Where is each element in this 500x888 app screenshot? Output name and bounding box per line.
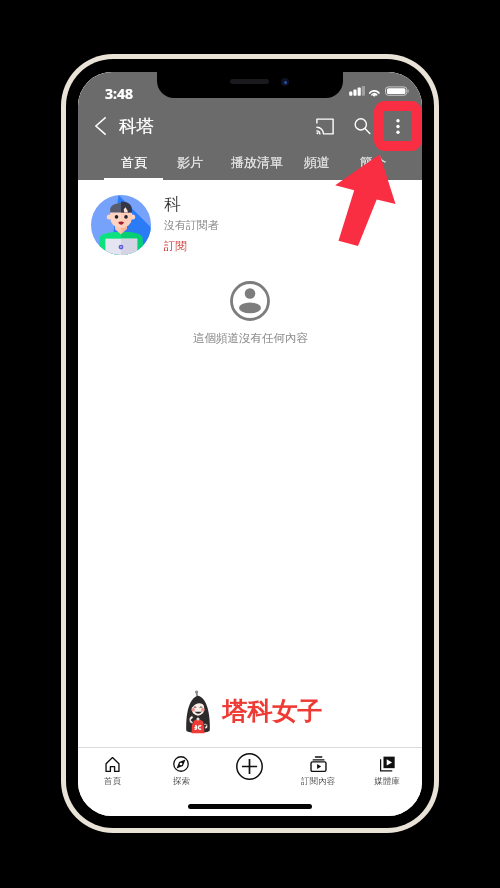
- button[interactable]: 頻道: [296, 148, 338, 180]
- staticText: 3:48: [105, 84, 133, 103]
- button[interactable]: Cast: [305, 104, 345, 148]
- staticText: 科: [164, 194, 181, 215]
- button[interactable]: Search: [342, 104, 382, 148]
- button[interactable]: 首頁: [113, 148, 155, 180]
- button[interactable]: 探索: [149, 748, 213, 788]
- button[interactable]: 簡介: [352, 148, 394, 180]
- staticText: 科塔: [119, 115, 154, 137]
- staticText: 播放清單: [231, 154, 283, 170]
- staticText: 探索: [173, 776, 190, 787]
- button[interactable]: Back: [80, 104, 120, 148]
- staticText: 媒體庫: [374, 776, 400, 787]
- staticText: 首頁: [121, 154, 147, 170]
- staticText: 這個頻道沒有任何內容: [193, 331, 308, 345]
- button[interactable]: 媒體庫: [355, 748, 419, 788]
- button[interactable]: 播放清單: [223, 148, 291, 180]
- staticText: 訂閱: [164, 239, 187, 253]
- button[interactable]: Create: [215, 748, 283, 782]
- staticText: 首頁: [104, 776, 121, 787]
- staticText: 影片: [177, 154, 203, 170]
- button[interactable]: 訂閱內容: [286, 748, 350, 788]
- staticText: 塔科女子: [222, 696, 322, 727]
- button[interactable]: 首頁: [80, 748, 144, 788]
- staticText: 簡介: [360, 154, 386, 170]
- button[interactable]: More options: [378, 104, 418, 148]
- staticText: 頻道: [304, 154, 330, 170]
- staticText: 沒有訂閱者: [164, 218, 219, 232]
- staticText: 訂閱內容: [301, 776, 335, 787]
- button[interactable]: 訂閱: [164, 239, 187, 253]
- button[interactable]: 影片: [169, 148, 211, 180]
